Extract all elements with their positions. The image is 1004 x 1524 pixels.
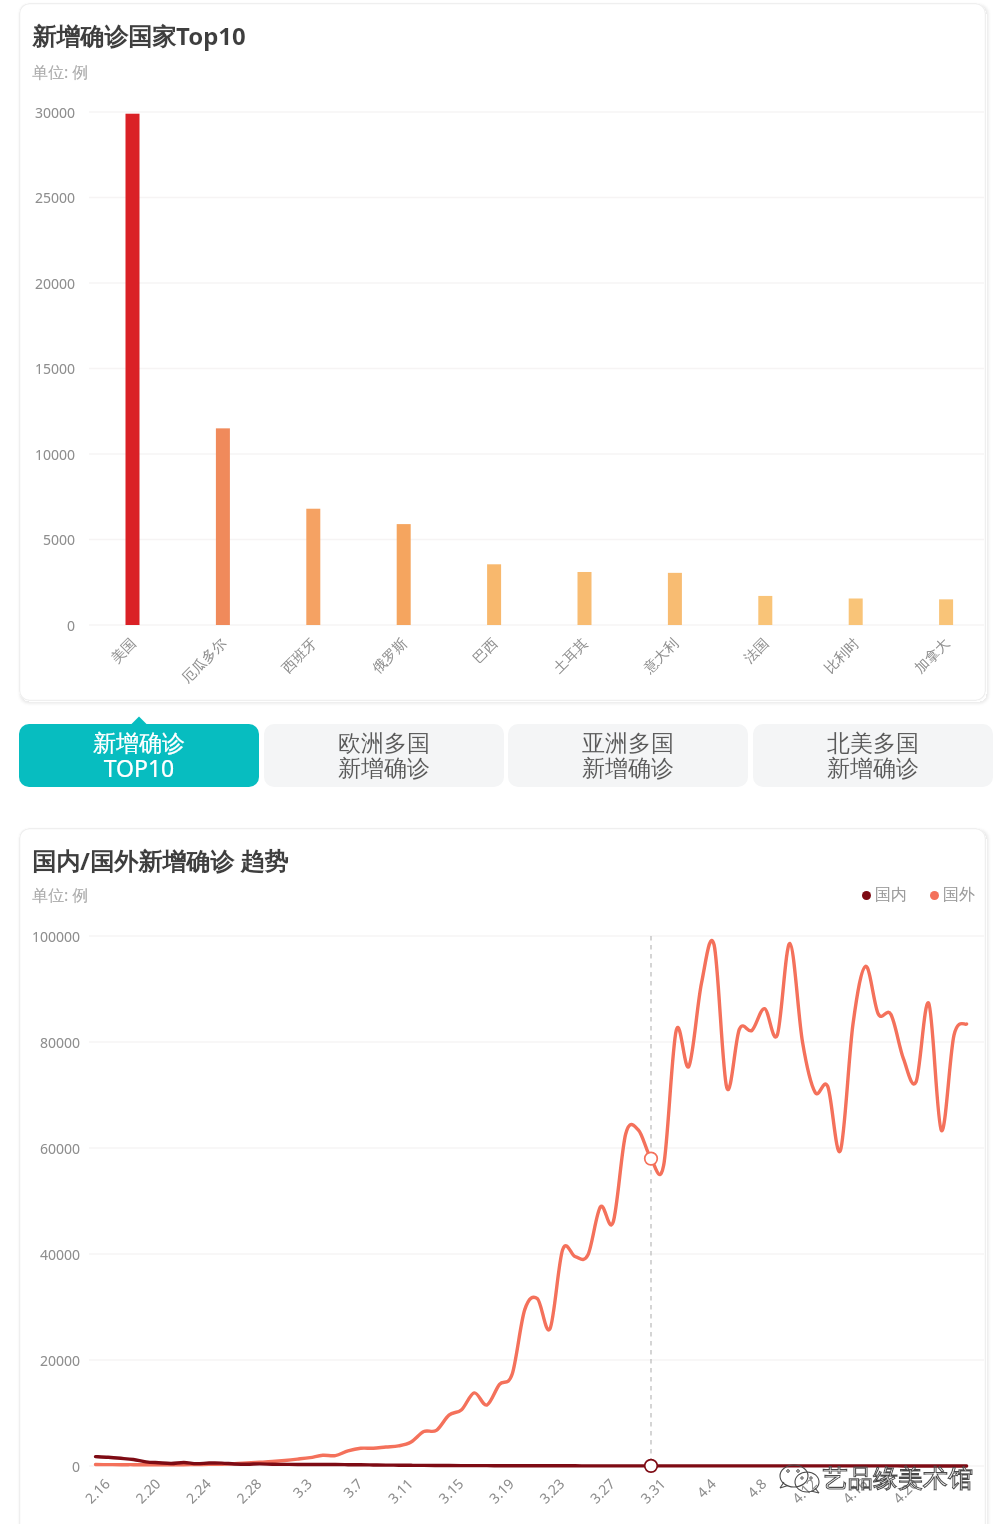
staticText: 欧洲多国 新增确诊 xyxy=(338,729,430,782)
button[interactable]: 国内/国外新增确诊 趋势 xyxy=(19,828,986,1524)
staticText: 北美多国 新增确诊 xyxy=(827,729,919,782)
staticText: 单位: 例 xyxy=(32,61,89,83)
button[interactable]: 新增确诊 TOP10 xyxy=(19,724,259,787)
staticText: 亚洲多国 新增确诊 xyxy=(582,729,674,782)
button[interactable]: 亚洲多国 新增确诊 xyxy=(508,724,748,787)
button[interactable]: 北美多国 新增确诊 xyxy=(753,724,993,787)
staticText: 国内 xyxy=(875,885,907,905)
staticText: 新增确诊国家Top10 xyxy=(32,19,246,52)
staticText: 国内/国外新增确诊 趋势 xyxy=(32,844,289,877)
staticText: 单位: 例 xyxy=(32,884,89,906)
button[interactable]: 新增确诊国家Top10 xyxy=(19,3,986,701)
staticText: 新增确诊 TOP10 xyxy=(93,729,185,783)
staticText: 国外 xyxy=(943,885,975,905)
button[interactable]: 欧洲多国 新增确诊 xyxy=(264,724,504,787)
